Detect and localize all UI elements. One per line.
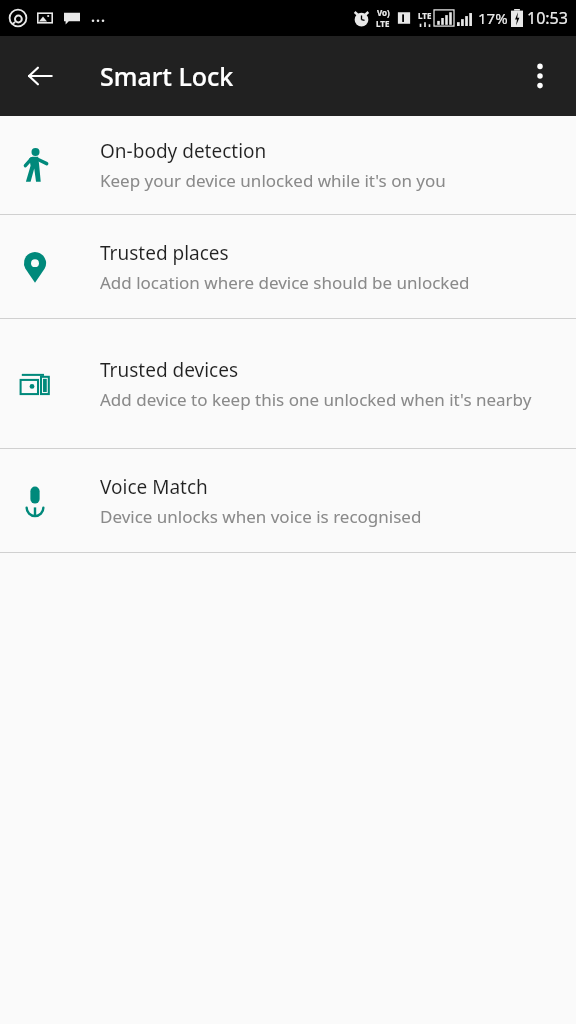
staticText: LTE	[418, 10, 432, 21]
staticText: Keep your device unlocked while it's on …	[100, 169, 446, 192]
staticText: Voice Match	[100, 474, 208, 500]
staticText: Add location where device should be unlo…	[100, 271, 470, 294]
staticText: Trusted devices	[100, 357, 239, 383]
button[interactable]: Trusted devices	[0, 319, 576, 448]
button[interactable]: More options	[514, 50, 566, 102]
staticText: Device unlocks when voice is recognised	[100, 505, 422, 528]
staticText: 10:53	[527, 7, 568, 29]
staticText: Trusted places	[100, 240, 229, 266]
staticText: Add device to keep this one unlocked whe…	[100, 388, 532, 411]
button[interactable]: Back	[12, 48, 68, 104]
staticText: On-body detection	[100, 138, 267, 164]
staticText: LTE	[376, 18, 390, 29]
button[interactable]: Voice Match	[0, 449, 576, 552]
staticText: Vo)	[377, 7, 390, 18]
staticText: 17%	[478, 8, 508, 28]
button[interactable]: On-body detection	[0, 116, 576, 214]
staticText: Smart Lock	[100, 59, 234, 93]
button[interactable]: Trusted places	[0, 215, 576, 318]
